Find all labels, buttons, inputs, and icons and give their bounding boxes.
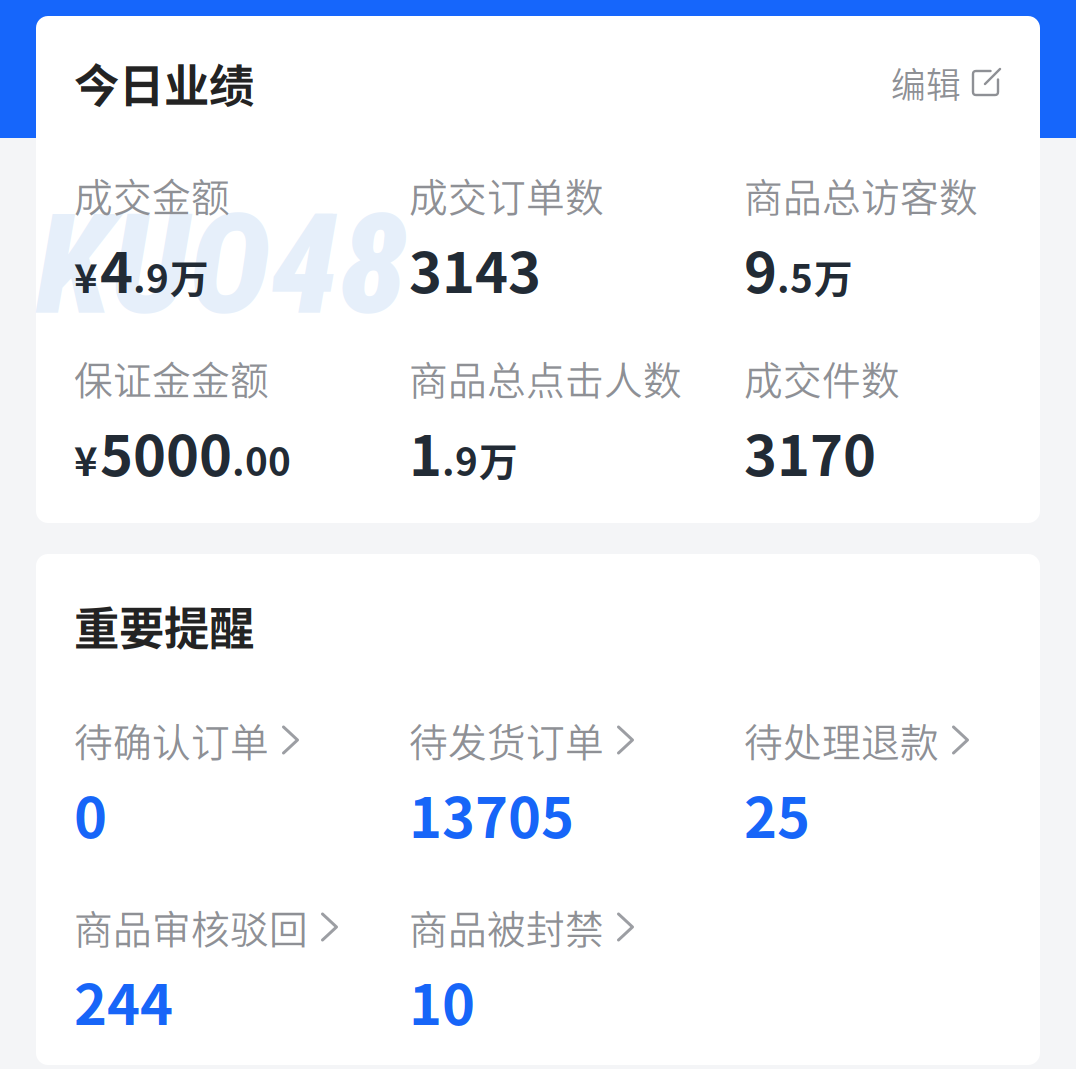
staticText: 25 — [744, 773, 810, 854]
staticText: 编辑 — [891, 58, 961, 108]
staticText: 待发货订单 — [409, 712, 604, 768]
staticText: 3143 — [409, 228, 541, 309]
staticText: 保证金金额 — [74, 350, 269, 406]
button[interactable]: 待发货订单 — [409, 712, 744, 833]
staticText: 重要提醒 — [74, 593, 254, 659]
staticText: 商品总访客数 — [744, 167, 978, 223]
staticText: 万 — [814, 248, 853, 304]
staticText: ¥ — [74, 430, 98, 487]
staticText: KUO48 — [36, 184, 408, 346]
staticText: .00 — [232, 431, 291, 487]
staticText: .9 — [133, 248, 169, 304]
staticText: 待确认订单 — [74, 712, 269, 768]
staticText: 4 — [100, 228, 133, 309]
staticText: 商品审核驳回 — [74, 899, 308, 955]
staticText: 0 — [74, 773, 107, 854]
button[interactable]: 待处理退款 — [744, 712, 1076, 833]
staticText: 商品总点击人数 — [409, 350, 682, 406]
staticText: 13705 — [409, 773, 574, 854]
button[interactable]: 商品审核驳回 — [74, 899, 409, 1020]
button[interactable]: 商品被封禁 — [409, 899, 744, 1020]
staticText: 商品被封禁 — [409, 899, 604, 955]
staticText: 3170 — [744, 411, 876, 492]
staticText: 244 — [74, 960, 173, 1041]
staticText: 万 — [479, 431, 518, 487]
button[interactable]: 待确认订单 — [74, 712, 409, 833]
staticText: 今日业绩 — [74, 50, 254, 116]
staticText: .9 — [442, 431, 478, 487]
staticText: ¥ — [74, 247, 98, 304]
staticText: 1 — [409, 411, 442, 492]
staticText: 9 — [744, 228, 777, 309]
staticText: .5 — [777, 248, 813, 304]
staticText: 5000 — [100, 411, 232, 492]
staticText: 万 — [170, 248, 209, 304]
staticText: 成交件数 — [744, 350, 900, 406]
button[interactable]: 编辑 — [891, 58, 1002, 108]
staticText: 成交金额 — [74, 167, 230, 223]
staticText: 10 — [409, 960, 475, 1041]
staticText: 待处理退款 — [744, 712, 939, 768]
staticText: 成交订单数 — [409, 167, 604, 223]
